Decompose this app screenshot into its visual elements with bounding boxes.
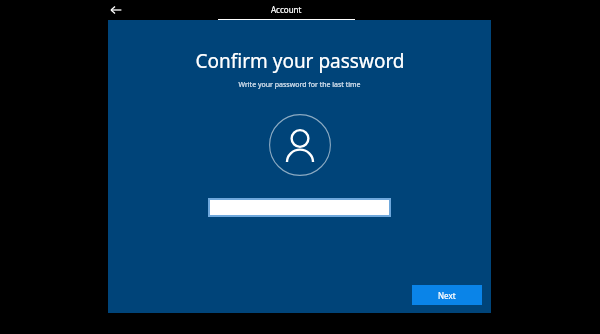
staticText: Confirm your password [195, 48, 405, 74]
button[interactable]: Next [412, 285, 482, 305]
staticText: Write your password for the last time [238, 80, 361, 90]
staticText: Account [271, 4, 302, 15]
button[interactable]: Back [106, 1, 126, 19]
button[interactable]: Account [218, 0, 355, 20]
staticText: Next [438, 290, 456, 301]
